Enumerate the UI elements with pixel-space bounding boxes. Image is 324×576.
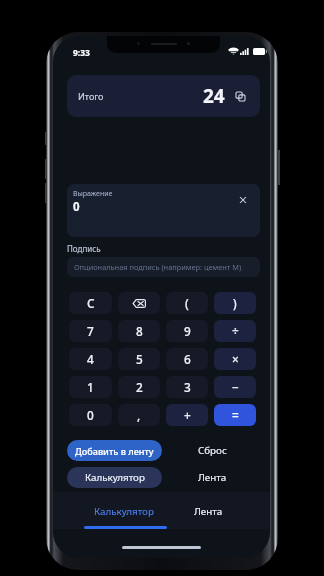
staticText: 1 [87, 379, 94, 395]
staticText: Лента [198, 471, 227, 484]
staticText: 8 [136, 323, 143, 339]
button[interactable]: ( [166, 292, 208, 314]
staticText: Добавить в ленту [75, 445, 154, 457]
staticText: Калькулятор [85, 471, 145, 484]
button[interactable]: ) [214, 292, 256, 314]
staticText: ÷ [232, 323, 239, 339]
staticText: ) [233, 295, 237, 311]
staticText: = [232, 407, 239, 423]
staticText: + [184, 407, 191, 423]
button[interactable]: Лента [167, 467, 258, 488]
button[interactable]: 5 [118, 348, 160, 370]
button[interactable]: − [214, 376, 256, 398]
staticText: , [137, 407, 141, 423]
button[interactable]: 6 [166, 348, 208, 370]
button[interactable]: Копировать [235, 91, 246, 102]
button[interactable]: 1 [69, 376, 112, 398]
staticText: Сброс [198, 444, 227, 457]
staticText: ( [185, 295, 189, 311]
other: Удалить [132, 299, 146, 308]
staticText: 0 [73, 199, 80, 215]
staticText: Опциональная подпись (например: цемент М… [74, 262, 242, 272]
staticText: 9 [184, 323, 191, 339]
staticText: Итого [78, 90, 104, 102]
button[interactable]: 0 [69, 404, 112, 426]
staticText: − [232, 379, 239, 395]
staticText: Выражение [73, 189, 113, 199]
staticText: 7 [87, 323, 94, 339]
staticText: Калькулятор [94, 505, 154, 518]
staticText: Подпись [67, 243, 101, 254]
button[interactable]: = [214, 404, 256, 426]
button[interactable]: Лента [166, 492, 250, 529]
button[interactable]: Удалить [118, 292, 160, 314]
staticText: 3 [184, 379, 191, 395]
button[interactable]: + [166, 404, 208, 426]
button[interactable]: Сброс [167, 440, 258, 461]
button[interactable]: × [214, 348, 256, 370]
staticText: 4 [87, 351, 94, 367]
staticText: 5 [136, 351, 143, 367]
button[interactable]: Итого [67, 75, 260, 117]
button[interactable]: Калькулятор [82, 492, 166, 529]
button[interactable]: , [118, 404, 160, 426]
staticText: Лента [194, 505, 223, 518]
staticText: 24 [203, 83, 225, 109]
button[interactable]: C [69, 292, 112, 314]
staticText: 2 [136, 379, 143, 395]
staticText: C [87, 295, 95, 311]
staticText: 0 [87, 407, 94, 423]
button[interactable]: Выражение [67, 184, 260, 237]
button[interactable]: Калькулятор [67, 467, 162, 488]
button[interactable]: Очистить [237, 194, 249, 206]
button[interactable]: 9 [166, 320, 208, 342]
button[interactable]: Опциональная подпись (например: цемент М… [67, 257, 260, 277]
button[interactable]: 8 [118, 320, 160, 342]
button[interactable]: ÷ [214, 320, 256, 342]
button[interactable]: Добавить в ленту [67, 440, 162, 461]
button[interactable]: 2 [118, 376, 160, 398]
button[interactable]: 4 [69, 348, 112, 370]
staticText: 9:33 [73, 47, 90, 59]
staticText: × [232, 351, 239, 367]
button[interactable]: 7 [69, 320, 112, 342]
staticText: 6 [184, 351, 191, 367]
button[interactable]: 3 [166, 376, 208, 398]
